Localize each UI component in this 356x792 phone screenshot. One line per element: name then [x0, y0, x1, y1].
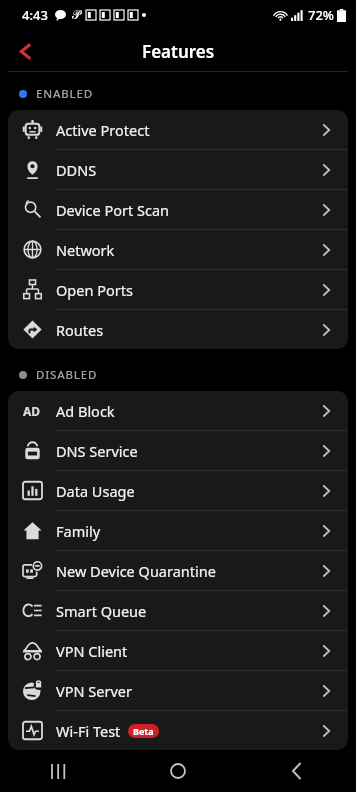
staticText: 72% — [308, 6, 334, 24]
staticText: Wi-Fi Test — [56, 721, 121, 741]
button[interactable]: Device Port Scan — [8, 190, 348, 229]
staticText: Ad Block — [56, 401, 115, 421]
staticText: Active Protect — [56, 120, 150, 140]
staticText: Family — [56, 521, 101, 541]
staticText: VPN Server — [56, 681, 132, 701]
button[interactable]: Wi-Fi Test — [8, 711, 348, 750]
staticText: Open Ports — [56, 280, 133, 300]
button[interactable]: DDNS — [8, 150, 348, 189]
staticText: 𝒫 — [72, 9, 81, 21]
button[interactable]: Active Protect — [8, 110, 348, 149]
button[interactable]: Network — [8, 230, 348, 269]
button[interactable]: Data Usage — [8, 471, 348, 510]
button[interactable]: Smart Queue — [8, 591, 348, 630]
button[interactable]: New Device Quarantine — [8, 551, 348, 590]
button[interactable]: Recent apps — [31, 750, 87, 792]
staticText: DNS Service — [56, 441, 138, 461]
staticText: VPN Client — [56, 641, 128, 661]
button[interactable]: Back — [269, 750, 325, 792]
staticText: Network — [56, 240, 115, 260]
staticText: Smart Queue — [56, 601, 147, 621]
button[interactable]: Family — [8, 511, 348, 550]
button[interactable]: Home — [150, 750, 206, 792]
button[interactable]: Back — [6, 31, 46, 71]
staticText: Beta — [133, 725, 154, 737]
staticText: New Device Quarantine — [56, 561, 216, 581]
staticText: ENABLED — [36, 86, 93, 102]
staticText: Device Port Scan — [56, 200, 170, 220]
staticText: Features — [142, 40, 215, 63]
staticText: Data Usage — [56, 481, 135, 501]
button[interactable]: Routes — [8, 310, 348, 349]
staticText: 4:43 — [22, 6, 48, 24]
button[interactable]: AD — [8, 391, 348, 430]
button[interactable]: Open Ports — [8, 270, 348, 309]
button[interactable]: DNS Service — [8, 431, 348, 470]
staticText: AD — [23, 403, 41, 419]
staticText: DISABLED — [36, 367, 98, 383]
button[interactable]: VPN Server — [8, 671, 348, 710]
staticText: Routes — [56, 320, 104, 340]
staticText: DDNS — [56, 160, 97, 180]
button[interactable]: VPN Client — [8, 631, 348, 670]
